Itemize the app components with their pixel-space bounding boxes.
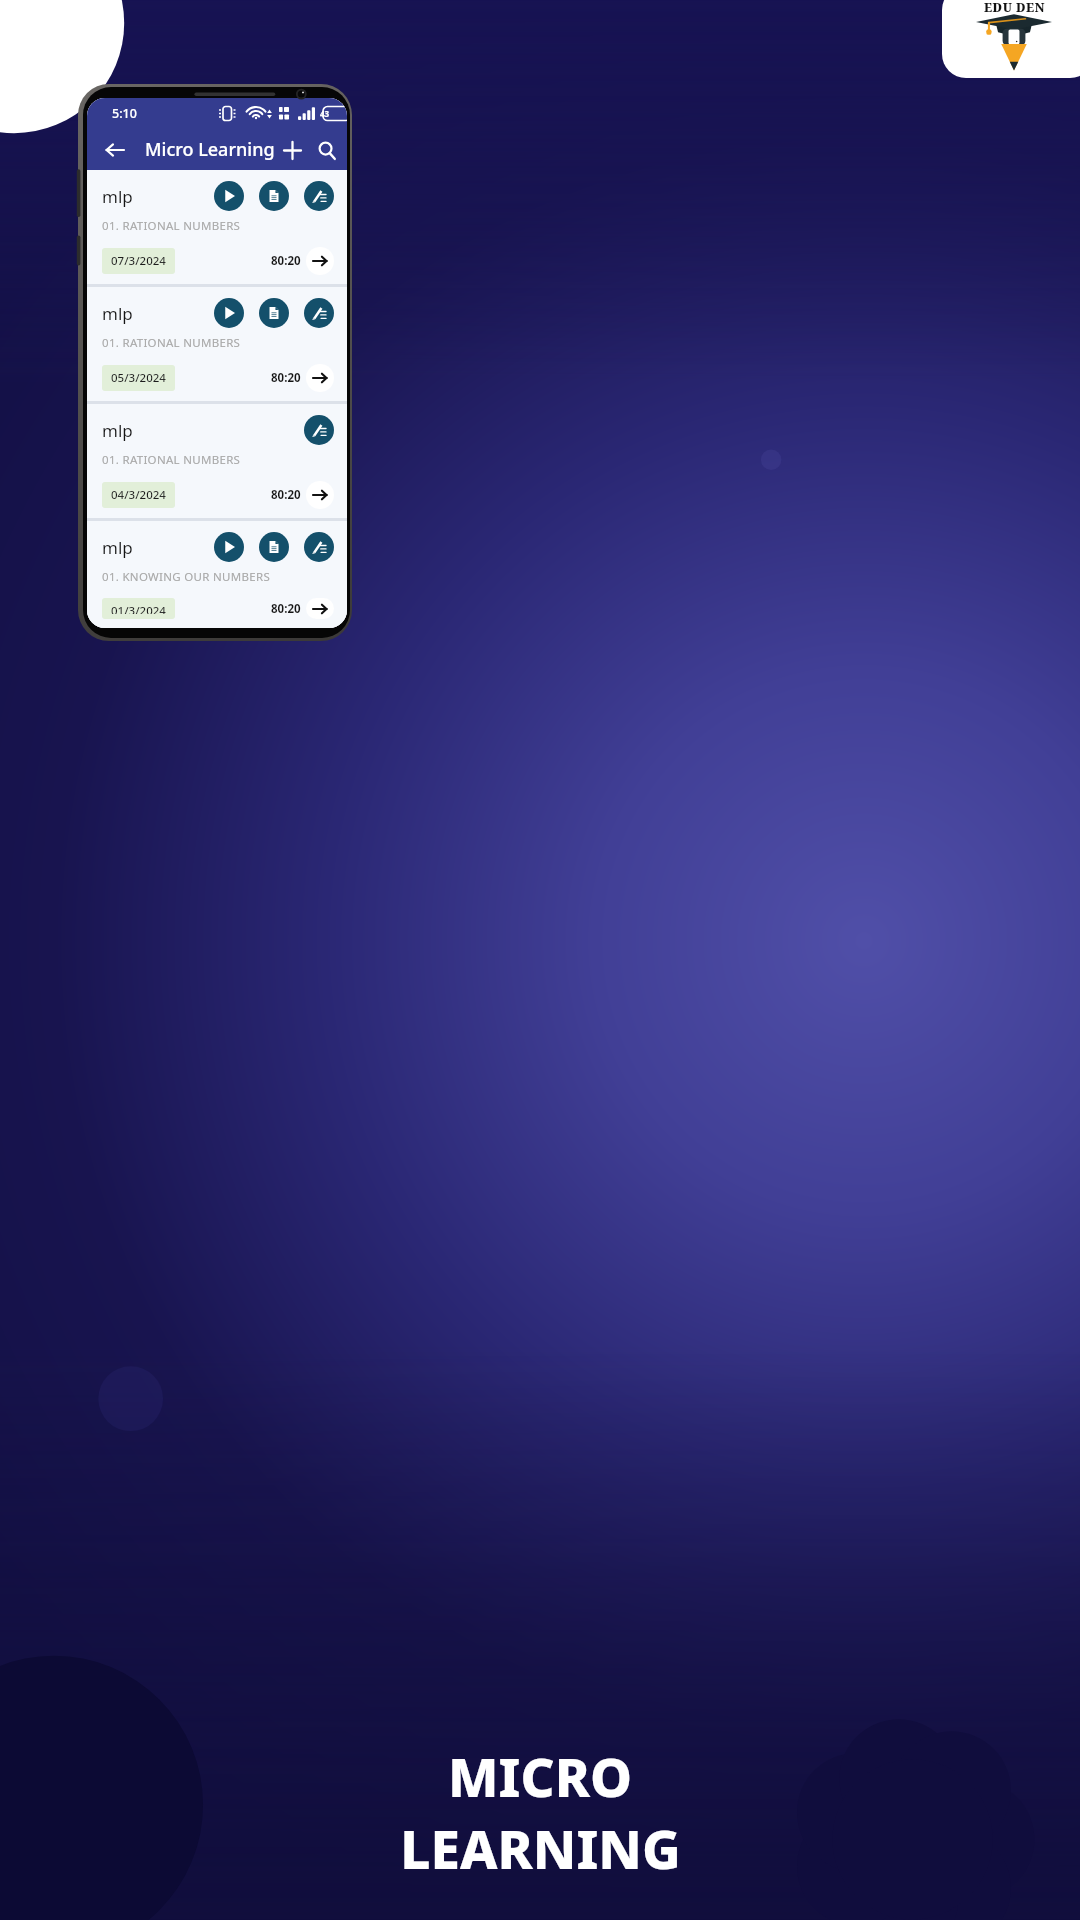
button[interactable]: Edit: [304, 181, 334, 211]
button[interactable]: Document: [259, 181, 289, 211]
staticText: mlp: [102, 185, 133, 208]
staticText: 5:10: [112, 105, 137, 122]
button[interactable]: Back: [98, 133, 132, 167]
staticText: 04/3/2024: [111, 487, 166, 503]
button[interactable]: mlp: [87, 404, 347, 518]
button[interactable]: Open: [306, 481, 334, 509]
staticText: mlp: [102, 536, 133, 559]
button[interactable]: mlp: [87, 521, 347, 628]
button[interactable]: Document: [259, 298, 289, 328]
staticText: Micro Learning: [145, 137, 275, 162]
button[interactable]: Play: [214, 298, 244, 328]
staticText: 07/3/2024: [111, 253, 166, 269]
staticText: 01. RATIONAL NUMBERS: [102, 452, 241, 468]
button[interactable]: Edit: [304, 298, 334, 328]
staticText: 01. KNOWING OUR NUMBERS: [102, 569, 270, 585]
staticText: 43: [320, 108, 330, 119]
button[interactable]: Open: [306, 247, 334, 275]
staticText: LEARNING: [400, 1812, 681, 1884]
button[interactable]: Add: [275, 133, 309, 167]
button[interactable]: Open: [306, 598, 334, 619]
staticText: mlp: [102, 419, 133, 442]
staticText: mlp: [102, 302, 133, 325]
button[interactable]: mlp: [87, 287, 347, 401]
button[interactable]: Play: [214, 181, 244, 211]
button[interactable]: Edit: [304, 532, 334, 562]
staticText: 80:20: [271, 487, 301, 503]
button[interactable]: Document: [259, 532, 289, 562]
staticText: MICRO: [448, 1740, 632, 1812]
button[interactable]: Search: [318, 133, 336, 167]
staticText: 80:20: [271, 253, 301, 269]
staticText: 80:20: [271, 370, 301, 386]
staticText: 05/3/2024: [111, 370, 166, 386]
staticText: 01. RATIONAL NUMBERS: [102, 335, 241, 351]
staticText: 01. RATIONAL NUMBERS: [102, 218, 241, 234]
staticText: EDU DEN: [984, 0, 1045, 15]
staticText: 01/3/2024: [111, 603, 166, 614]
button[interactable]: mlp: [87, 170, 347, 284]
button[interactable]: Play: [214, 532, 244, 562]
button[interactable]: Open: [306, 364, 334, 392]
button[interactable]: Edit: [304, 415, 334, 445]
staticText: 80:20: [271, 601, 301, 617]
